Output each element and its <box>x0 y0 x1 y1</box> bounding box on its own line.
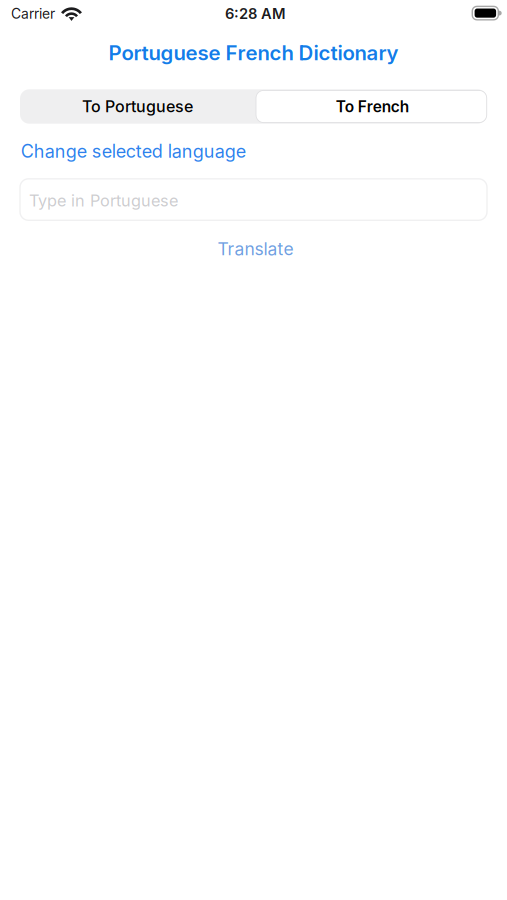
button[interactable]: Translate <box>216 238 294 260</box>
button[interactable]: Change selected language <box>21 140 249 162</box>
staticText: Type in Portuguese <box>29 191 178 210</box>
staticText: To French <box>336 97 409 116</box>
staticText: Change selected language <box>21 140 246 162</box>
button[interactable]: Type in Portuguese <box>20 179 487 220</box>
staticText: To Portuguese <box>82 97 193 116</box>
button[interactable]: To Portuguese <box>20 89 255 124</box>
button[interactable]: To French <box>255 89 487 124</box>
staticText: Portuguese French Dictionary <box>108 40 398 65</box>
staticText: 6:28 AM <box>225 5 286 23</box>
staticText: Carrier <box>11 5 55 22</box>
staticText: Translate <box>217 238 293 259</box>
